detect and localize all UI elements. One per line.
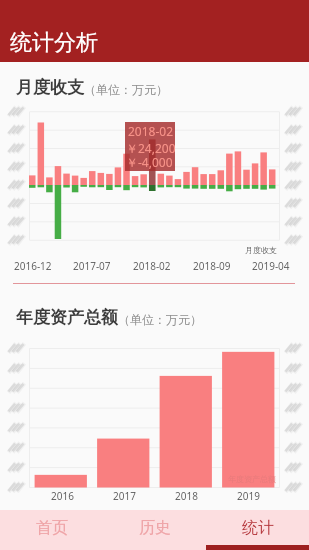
staticText: 统计分析 bbox=[10, 29, 98, 57]
staticText: 2016 bbox=[51, 489, 74, 503]
button[interactable]: 统计 bbox=[206, 510, 309, 550]
staticText: （单位：万元） bbox=[84, 82, 168, 97]
staticText: 年度资产总额 bbox=[16, 307, 118, 328]
staticText: 2019-04 bbox=[252, 259, 290, 273]
staticText: 2018-02 bbox=[133, 259, 171, 273]
staticText: 统计 bbox=[242, 518, 274, 538]
staticText: 年度资产总额 bbox=[228, 474, 276, 484]
staticText: 2017 bbox=[113, 489, 136, 503]
staticText: 2016-12 bbox=[14, 259, 52, 273]
staticText: 月度收支 bbox=[16, 77, 84, 98]
staticText: 2018-09 bbox=[193, 259, 231, 273]
button[interactable]: 首页 bbox=[0, 510, 103, 550]
staticText: 月度收支 bbox=[245, 245, 277, 255]
staticText: ￥-4,000 bbox=[126, 154, 173, 170]
staticText: 2018 bbox=[175, 489, 198, 503]
staticText: 2017-07 bbox=[73, 259, 111, 273]
staticText: 2018-02 bbox=[128, 123, 174, 139]
staticText: ￥24,200 bbox=[126, 140, 176, 156]
staticText: （单位：万元） bbox=[118, 312, 202, 327]
staticText: 首页 bbox=[36, 518, 68, 538]
button[interactable]: 历史 bbox=[103, 510, 206, 550]
staticText: 2019 bbox=[237, 489, 260, 503]
staticText: 历史 bbox=[139, 518, 171, 538]
